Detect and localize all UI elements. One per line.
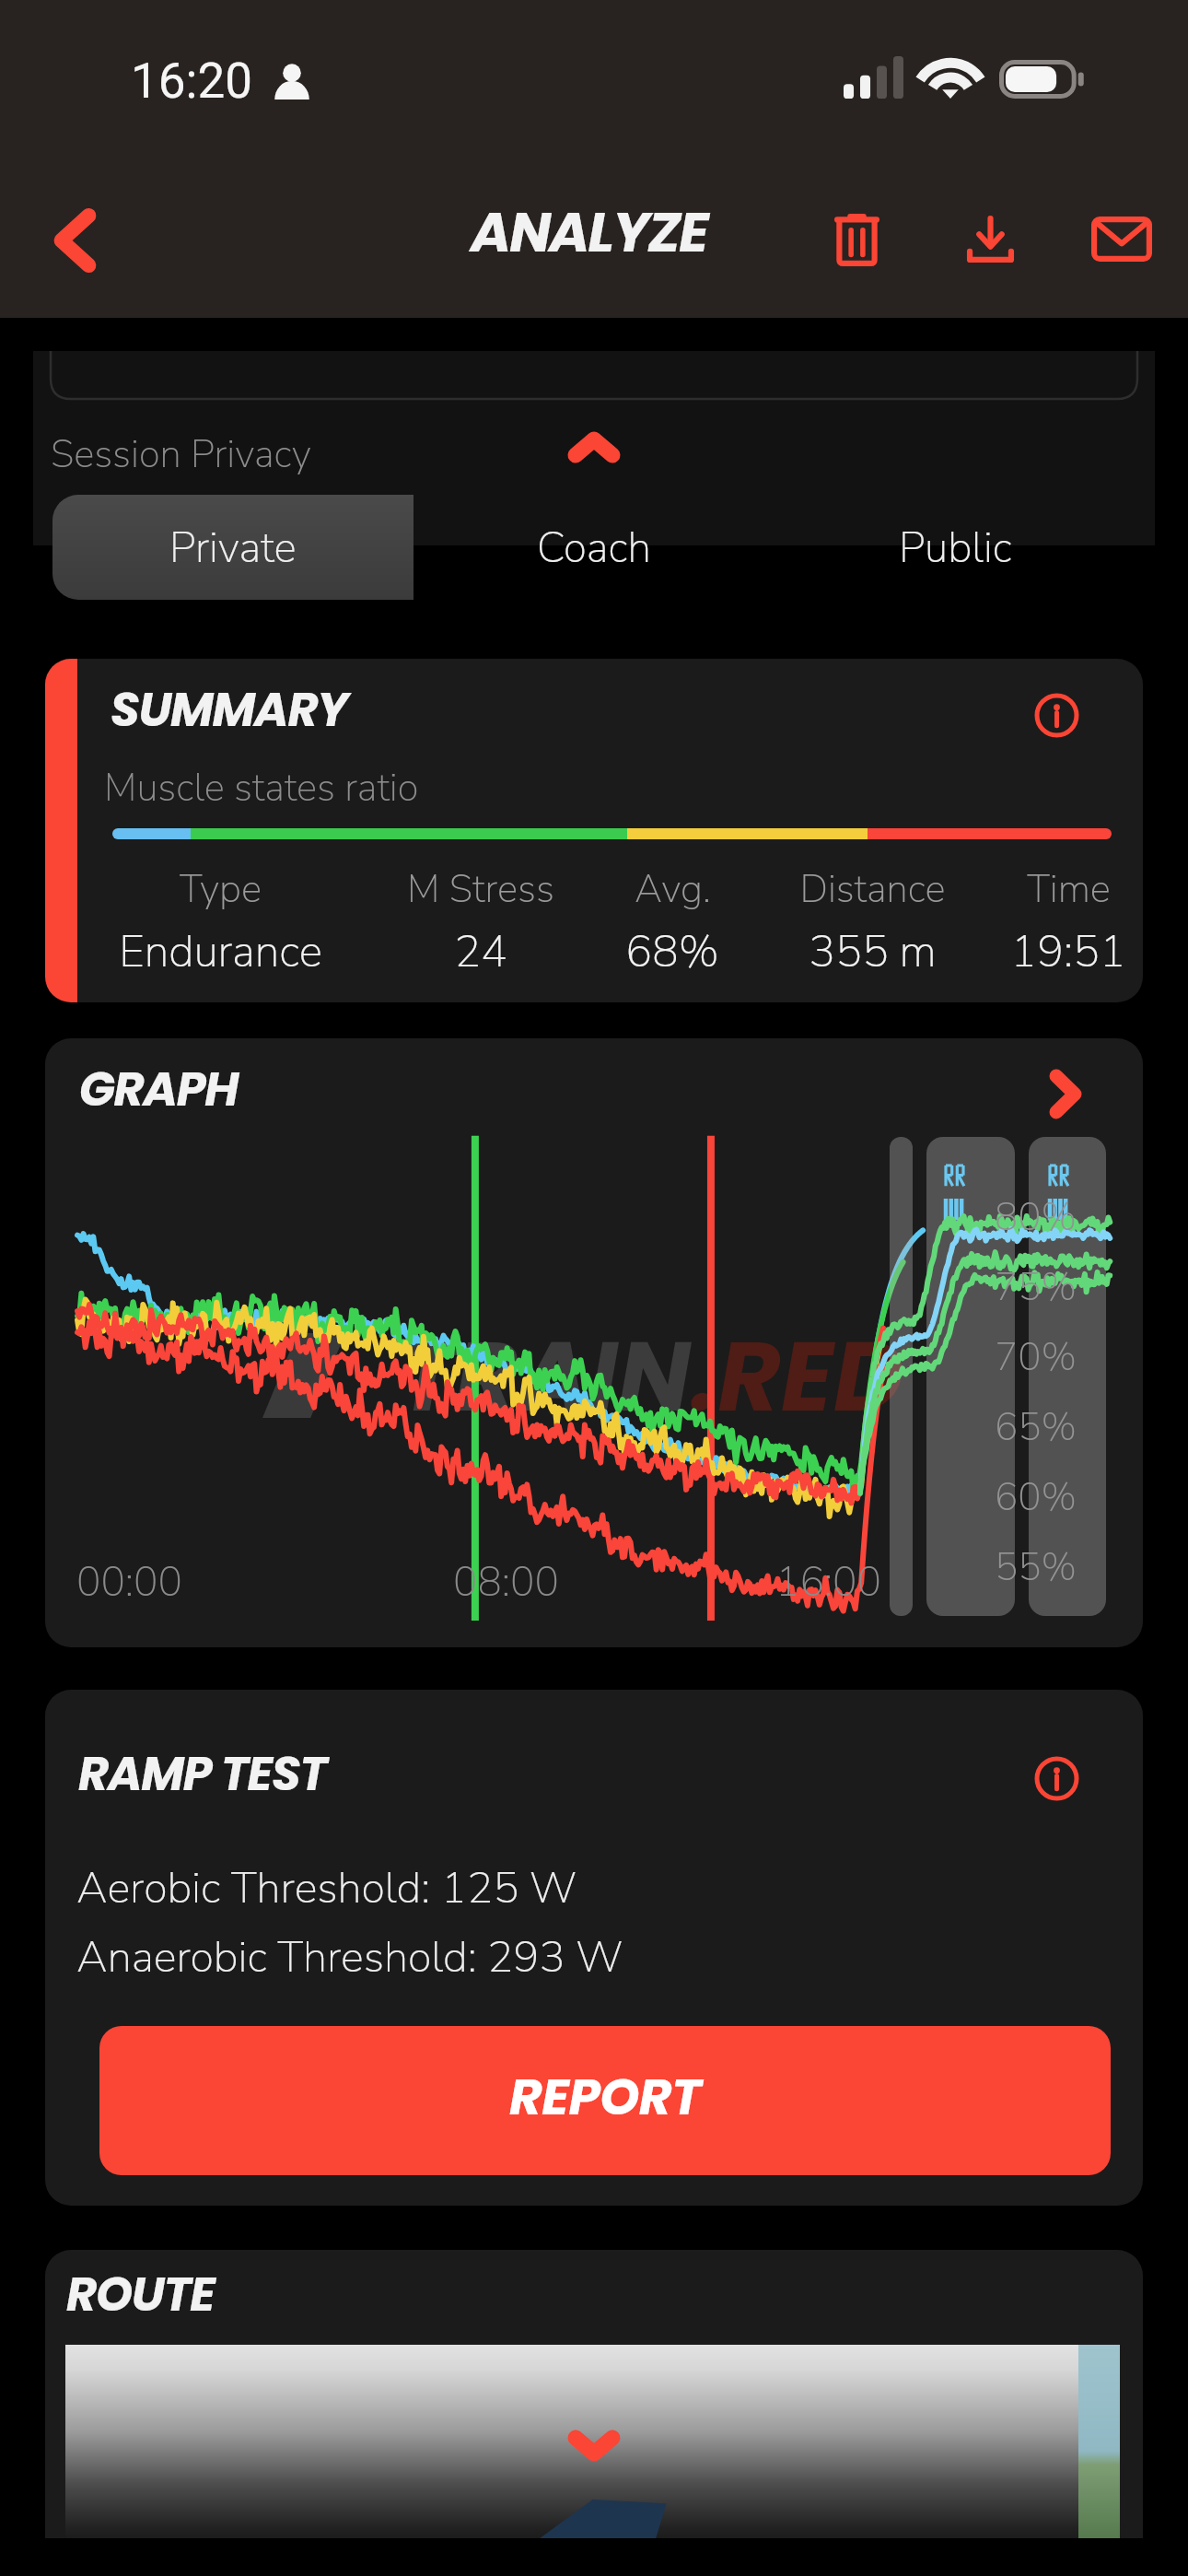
staticText: 08:00 [453, 1555, 559, 1610]
staticText: .RED [691, 1309, 904, 1445]
staticText: Muscle states ratio [104, 762, 419, 814]
staticText: 24 [454, 921, 507, 981]
staticText: Time [1027, 863, 1111, 916]
staticText: SUMMARY [111, 676, 348, 742]
button[interactable]: Coach [413, 495, 775, 600]
staticText: Endurance [119, 921, 322, 981]
button[interactable]: Download [951, 200, 1029, 277]
staticText: 70% [995, 1331, 1077, 1384]
staticText: 19:51 [1010, 921, 1126, 981]
button[interactable]: REPORT [99, 2026, 1111, 2175]
staticText: Session Privacy [51, 428, 311, 481]
staticText: ROUTE [66, 2261, 215, 2326]
staticText: 68% [625, 921, 719, 981]
button[interactable]: RAMP TEST [45, 1690, 1143, 2206]
staticText: ANALYZE [471, 193, 707, 271]
staticText: Anaerobic Threshold: 293 W [76, 1927, 623, 1986]
button[interactable]: SUMMARY [45, 659, 1143, 1002]
staticText: Type [180, 863, 262, 916]
staticText: GRAPH [79, 1056, 239, 1121]
staticText: RAMP TEST [78, 1740, 327, 1806]
staticText: Coach [537, 519, 651, 577]
staticText: 00:00 [76, 1555, 182, 1610]
staticText: Aerobic Threshold: 125 W [76, 1858, 577, 1917]
button[interactable]: GRAPH [45, 1038, 1143, 1647]
staticText: 16:00 [775, 1555, 881, 1610]
staticText: Avg. [635, 863, 711, 916]
button[interactable]: Collapse [553, 405, 635, 488]
staticText: 355 m [809, 921, 937, 981]
staticText: 80% [995, 1191, 1077, 1244]
button[interactable]: Email [1083, 200, 1160, 277]
staticText: M Stress [407, 863, 554, 916]
staticText: REPORT [509, 2061, 701, 2132]
staticText: 16:20 [131, 53, 252, 110]
staticText: 65% [995, 1401, 1077, 1454]
staticText: 55% [995, 1541, 1077, 1594]
staticText: Distance [799, 863, 946, 916]
staticText: 60% [995, 1471, 1077, 1524]
button[interactable]: Back [30, 196, 119, 285]
button[interactable]: Open graph [1031, 1059, 1101, 1129]
button[interactable]: Ramp test info [1027, 1749, 1086, 1808]
button[interactable]: ROUTE [45, 2250, 1143, 2538]
button[interactable]: Delete [818, 200, 895, 277]
staticText: Public [899, 519, 1012, 577]
button[interactable]: Private [52, 495, 413, 600]
button[interactable]: Public [775, 495, 1136, 600]
staticText: 75% [995, 1261, 1077, 1314]
button[interactable]: Summary info [1027, 685, 1086, 744]
staticText: TRAIN [398, 1309, 691, 1445]
staticText: Private [169, 519, 297, 577]
